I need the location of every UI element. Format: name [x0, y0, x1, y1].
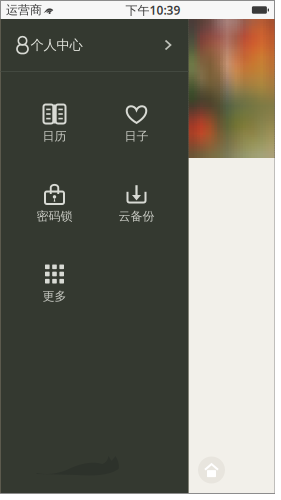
button[interactable]: 密码锁 [13, 152, 95, 232]
staticText: 下午10:39 [125, 2, 180, 18]
staticText: 运营商 [6, 3, 42, 17]
staticText: 云备份 [118, 209, 154, 224]
staticText: 日子 [124, 129, 148, 144]
staticText: 日历 [42, 129, 66, 144]
staticText: 更多 [42, 289, 66, 304]
staticText: 密码锁 [36, 209, 72, 224]
button[interactable]: 日历 [13, 72, 95, 152]
button[interactable]: 日子 [95, 72, 177, 152]
button[interactable]: 个人中心 [0, 19, 188, 71]
button[interactable]: Home [194, 453, 228, 487]
staticText: 个人中心 [30, 37, 82, 53]
button[interactable]: 更多 [13, 232, 95, 312]
button[interactable]: 云备份 [95, 152, 177, 232]
